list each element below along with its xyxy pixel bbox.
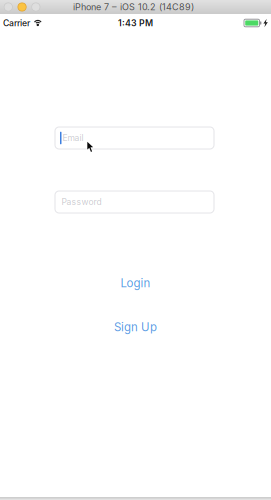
staticText: Email [62, 133, 83, 143]
staticText: 1:43 PM [118, 18, 153, 28]
staticText: Login [120, 276, 150, 290]
button[interactable]: Email [55, 127, 214, 149]
staticText: iPhone 7 – iOS 10.2 (14C89) [73, 1, 194, 12]
button[interactable]: Password [55, 191, 214, 213]
staticText: Carrier [3, 18, 30, 28]
button[interactable]: Zoom window [32, 3, 40, 11]
staticText: Sign Up [114, 320, 157, 334]
button[interactable]: Close window [4, 3, 12, 11]
button[interactable]: Minimize window [18, 3, 26, 11]
staticText: Password [61, 197, 101, 207]
button[interactable]: Login [0, 276, 271, 290]
button[interactable]: Sign Up [0, 320, 271, 334]
